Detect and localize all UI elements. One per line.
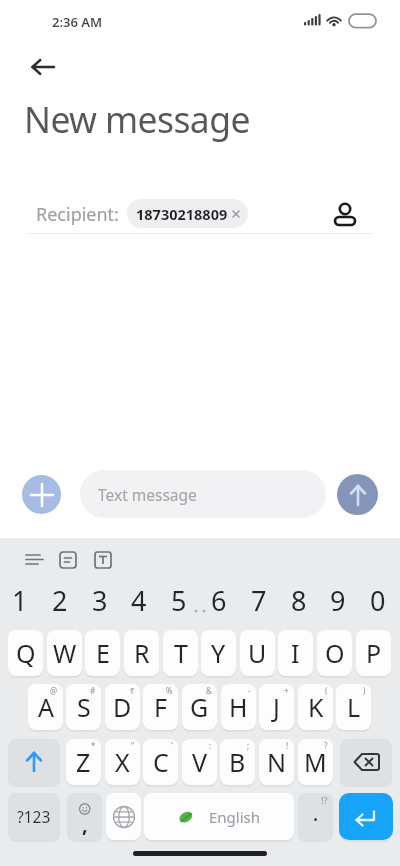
staticText: A bbox=[38, 690, 54, 724]
staticText: Recipient: bbox=[36, 202, 119, 227]
staticText: R bbox=[134, 636, 150, 670]
button[interactable]: A bbox=[28, 684, 63, 730]
button[interactable]: U bbox=[240, 630, 275, 676]
staticText: I bbox=[291, 636, 300, 670]
staticText: V bbox=[192, 745, 208, 779]
button[interactable]: 0 bbox=[358, 579, 398, 621]
staticText: S bbox=[77, 690, 91, 724]
staticText: D bbox=[113, 690, 132, 724]
button[interactable]: L bbox=[336, 684, 371, 730]
staticText: Text message bbox=[98, 484, 197, 505]
button[interactable]: E bbox=[85, 630, 120, 676]
button[interactable]: S bbox=[66, 684, 101, 730]
staticText: W bbox=[53, 636, 77, 670]
staticText: " bbox=[131, 740, 135, 751]
button[interactable]: M bbox=[298, 739, 333, 785]
button[interactable]: Y bbox=[201, 630, 236, 676]
staticText: 9 bbox=[330, 582, 346, 619]
button[interactable]: 6 bbox=[199, 579, 239, 621]
staticText: ; bbox=[247, 740, 250, 751]
staticText: + bbox=[284, 685, 289, 696]
button[interactable] bbox=[8, 739, 60, 785]
button[interactable]: F bbox=[143, 684, 178, 730]
button[interactable]: V bbox=[182, 739, 217, 785]
button[interactable]: N bbox=[259, 739, 294, 785]
staticText: ?123 bbox=[17, 806, 51, 827]
button[interactable]: I bbox=[278, 630, 313, 676]
staticText: E bbox=[96, 636, 110, 670]
staticText: 5 bbox=[171, 582, 187, 619]
button[interactable]: W bbox=[47, 630, 82, 676]
staticText: New message bbox=[24, 95, 250, 143]
button[interactable]: X bbox=[105, 739, 140, 785]
staticText: C bbox=[153, 745, 169, 779]
staticText: Y bbox=[211, 636, 226, 670]
button[interactable]: H bbox=[221, 684, 256, 730]
button[interactable] bbox=[106, 793, 141, 840]
button[interactable] bbox=[337, 474, 378, 515]
button[interactable]: D bbox=[105, 684, 140, 730]
button[interactable]: O bbox=[317, 630, 352, 676]
button[interactable]: T bbox=[163, 630, 198, 676]
button[interactable]: Z bbox=[66, 739, 101, 785]
staticText: T bbox=[174, 636, 188, 670]
staticText: B bbox=[229, 745, 246, 779]
staticText: @ bbox=[50, 685, 58, 696]
button[interactable]: 5 bbox=[159, 579, 199, 621]
button[interactable]: 4 bbox=[119, 579, 159, 621]
button[interactable]: . bbox=[298, 793, 333, 840]
staticText: * bbox=[91, 740, 96, 751]
button[interactable]: C bbox=[143, 739, 178, 785]
staticText: ) bbox=[363, 685, 366, 696]
staticText: N bbox=[267, 745, 287, 779]
button[interactable]: G bbox=[182, 684, 217, 730]
staticText: 0 bbox=[370, 582, 386, 619]
button[interactable]: P bbox=[356, 630, 391, 676]
staticText: 6 bbox=[211, 582, 227, 619]
button[interactable] bbox=[328, 194, 362, 234]
button[interactable]: 3 bbox=[80, 579, 120, 621]
staticText: English bbox=[209, 807, 261, 827]
staticText: 18730218809 bbox=[136, 204, 228, 224]
staticText: 3 bbox=[92, 582, 108, 619]
button[interactable]: J bbox=[259, 684, 294, 730]
staticText: Z bbox=[76, 745, 91, 779]
staticText: ? bbox=[324, 740, 328, 751]
button[interactable]: Text message bbox=[80, 470, 326, 518]
button[interactable]: 18730218809 bbox=[127, 199, 248, 228]
button[interactable]: Q bbox=[8, 630, 43, 676]
button[interactable]: R bbox=[124, 630, 159, 676]
staticText: P bbox=[366, 636, 382, 670]
button[interactable] bbox=[339, 793, 393, 840]
staticText: % bbox=[166, 685, 173, 696]
button[interactable]: English bbox=[144, 793, 294, 840]
button[interactable]: 2 bbox=[40, 579, 80, 621]
staticText: J bbox=[273, 690, 280, 724]
button[interactable]: B bbox=[220, 739, 255, 785]
button[interactable]: K bbox=[298, 684, 333, 730]
button[interactable]: 7 bbox=[239, 579, 279, 621]
staticText: 1 bbox=[12, 582, 28, 619]
button[interactable]: 9 bbox=[318, 579, 358, 621]
button[interactable]: , bbox=[67, 793, 102, 840]
staticText: 2:36 AM bbox=[52, 13, 103, 31]
staticText: - bbox=[248, 685, 251, 696]
staticText: . bbox=[313, 801, 319, 827]
staticText: M bbox=[304, 745, 327, 779]
staticText: F bbox=[154, 690, 167, 724]
staticText: !? bbox=[321, 794, 328, 806]
button[interactable]: 1 bbox=[0, 579, 40, 621]
staticText: 7 bbox=[251, 582, 267, 619]
staticText: K bbox=[308, 690, 324, 724]
button[interactable] bbox=[340, 739, 392, 785]
staticText: : bbox=[209, 740, 212, 751]
staticText: ! bbox=[286, 740, 289, 751]
button[interactable]: 8 bbox=[279, 579, 319, 621]
staticText: H bbox=[229, 690, 248, 724]
button[interactable] bbox=[22, 475, 61, 514]
staticText: 8 bbox=[291, 582, 307, 619]
button[interactable]: ?123 bbox=[8, 793, 60, 840]
staticText: 2 bbox=[52, 582, 68, 619]
staticText: X bbox=[115, 745, 130, 779]
button[interactable] bbox=[20, 52, 56, 82]
